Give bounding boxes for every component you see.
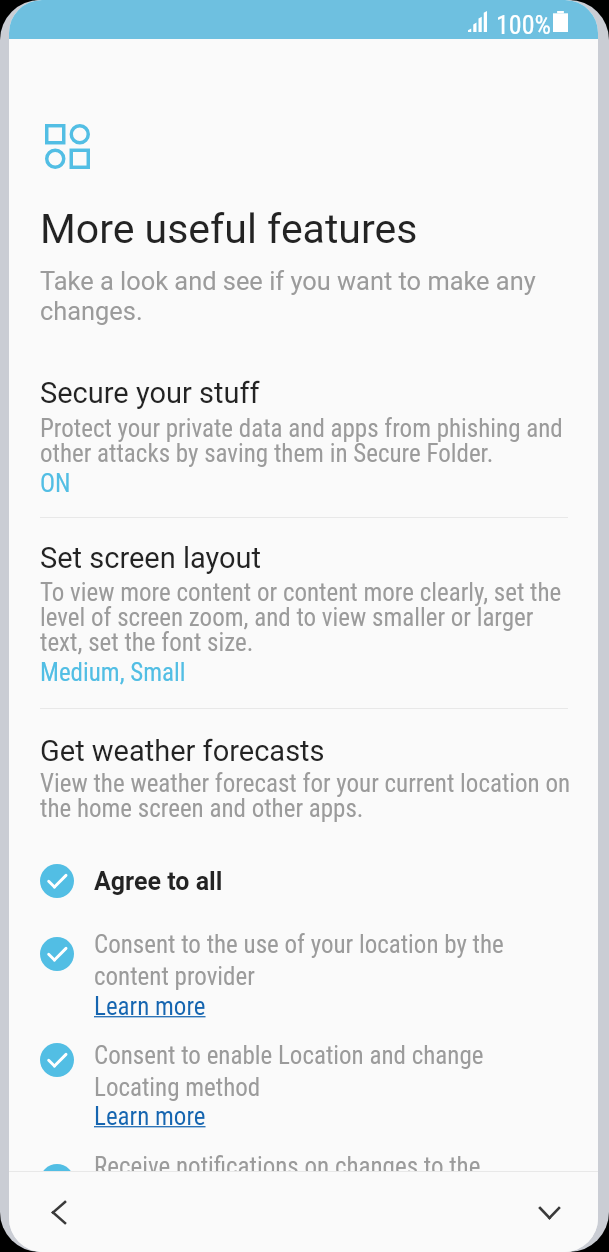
staticText: Medium, Small: [40, 658, 186, 687]
button[interactable]: [40, 937, 568, 1032]
staticText: To view more content or content more cle…: [40, 578, 562, 657]
staticText: More useful features: [40, 205, 418, 253]
staticText: Receive notifications on changes to the …: [94, 1152, 481, 1171]
button[interactable]: Back: [33, 1182, 93, 1242]
button[interactable]: [40, 864, 568, 898]
staticText: Set screen layout: [40, 541, 262, 575]
button[interactable]: [40, 1043, 568, 1138]
staticText: Consent to the use of your location by t…: [94, 930, 504, 991]
staticText: Protect your private data and apps from …: [40, 414, 563, 468]
button[interactable]: [40, 1164, 568, 1171]
button[interactable]: Learn more: [9, 0, 121, 29]
staticText: Consent to enable Location and change Lo…: [94, 1041, 484, 1102]
staticText: View the weather forecast for your curre…: [40, 769, 571, 823]
staticText: Get weather forecasts: [40, 734, 325, 768]
button[interactable]: Collapse: [528, 1182, 588, 1242]
staticText: Take a look and see if you want to make …: [40, 266, 536, 326]
staticText: Agree to all: [94, 867, 223, 896]
button[interactable]: Learn more: [9, 0, 121, 29]
staticText: ON: [40, 469, 71, 498]
staticText: Secure your stuff: [40, 376, 260, 410]
button[interactable]: Learn more: [9, 0, 121, 29]
staticText: 100%: [496, 10, 551, 40]
